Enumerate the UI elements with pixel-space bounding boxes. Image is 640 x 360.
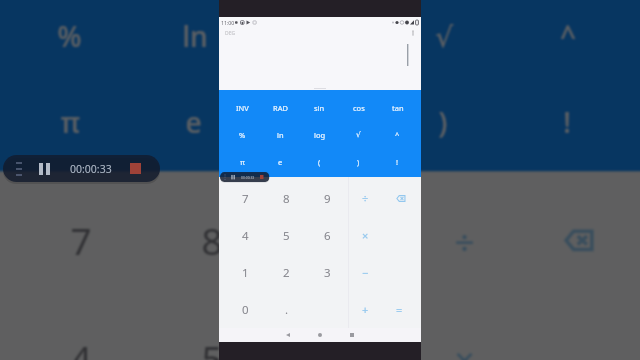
button[interactable]: ( (300, 148, 339, 175)
button[interactable]: 2 (266, 254, 307, 291)
staticText: tan (392, 103, 404, 113)
button[interactable]: 7 (13, 181, 147, 299)
staticText: ^ (395, 130, 400, 140)
staticText: ( (314, 104, 323, 143)
staticText: 6 (324, 228, 331, 244)
staticText: ) (438, 104, 448, 143)
staticText: 5 (283, 228, 290, 244)
button[interactable]: Pause (231, 175, 235, 179)
button[interactable]: e (131, 79, 256, 165)
staticText: . (285, 302, 289, 318)
staticText: e (186, 104, 205, 143)
button[interactable]: ln (261, 121, 300, 148)
button[interactable]: eq (382, 291, 416, 328)
staticText: cos (353, 103, 365, 113)
button[interactable]: 0 (224, 291, 266, 328)
staticText: 7 (70, 216, 93, 267)
button[interactable]: √ (381, 0, 506, 79)
button[interactable]: ! (378, 148, 417, 175)
button[interactable]: ) (381, 79, 506, 165)
button[interactable]: 9 (307, 180, 348, 217)
button[interactable]: % (223, 121, 261, 148)
staticText: 3 (324, 265, 331, 281)
button[interactable]: e (261, 148, 300, 175)
button[interactable]: ^ (378, 121, 417, 148)
button[interactable]: INV (223, 94, 261, 121)
button[interactable]: ) (339, 148, 378, 175)
button[interactable]: back (518, 181, 627, 299)
staticText: 6 (333, 335, 355, 360)
button[interactable]: sin (300, 94, 339, 121)
staticText: 1 (242, 265, 249, 281)
button[interactable]: π (10, 79, 131, 165)
staticText: RAD (273, 103, 288, 113)
button[interactable]: ( (256, 79, 381, 165)
button[interactable]: ÷ (410, 181, 518, 299)
staticText: ) (357, 157, 360, 167)
staticText: INV (236, 103, 249, 113)
button[interactable]: 6 (278, 299, 410, 360)
button[interactable]: Back (272, 328, 304, 342)
button[interactable]: − (348, 254, 382, 291)
button[interactable]: 8 (147, 181, 278, 299)
staticText: 9 (324, 191, 331, 207)
button[interactable]: 4 (224, 217, 266, 254)
staticText: 8 (283, 191, 290, 207)
staticText: = (396, 302, 403, 317)
button[interactable]: π (223, 148, 261, 175)
button[interactable]: 3 (307, 254, 348, 291)
other: Drag (16, 162, 22, 176)
button[interactable]: 7 (224, 180, 266, 217)
button[interactable]: Pause (39, 163, 50, 175)
button[interactable]: back (382, 180, 416, 217)
button[interactable]: % (10, 0, 131, 79)
staticText: 2 (283, 265, 290, 281)
button[interactable]: × (348, 217, 382, 254)
staticText: ! (396, 157, 399, 167)
button[interactable]: 5 (266, 217, 307, 254)
button[interactable]: Home (304, 328, 336, 342)
staticText: e (278, 157, 283, 167)
button[interactable]: ÷ (348, 180, 382, 217)
staticText: π (61, 104, 80, 143)
button[interactable]: 8 (266, 180, 307, 217)
staticText: ln (182, 18, 208, 56)
button[interactable]: RAD (261, 94, 300, 121)
button[interactable]: Stop (260, 175, 263, 179)
staticText: ( (318, 157, 321, 167)
button[interactable]: tan (378, 94, 417, 121)
staticText: ÷ (454, 216, 477, 264)
staticText: 5 (202, 335, 224, 360)
staticText: ln (277, 130, 284, 140)
staticText: − (362, 265, 369, 280)
button[interactable]: ! (506, 79, 630, 165)
button[interactable]: + (348, 291, 382, 328)
button[interactable]: Recents (336, 328, 368, 342)
button[interactable]: 1 (224, 254, 266, 291)
staticText: 7 (242, 191, 249, 207)
button[interactable]: × (410, 299, 518, 360)
button[interactable]: ^ (506, 0, 630, 79)
button[interactable]: 5 (147, 299, 278, 360)
button[interactable]: log (256, 0, 381, 79)
button[interactable]: 4 (13, 299, 147, 360)
button[interactable]: log (300, 121, 339, 148)
button[interactable]: 6 (307, 217, 348, 254)
staticText: ! (563, 104, 573, 143)
button[interactable]: cos (339, 94, 378, 121)
staticText: √ (435, 21, 454, 53)
staticText: 4 (242, 228, 249, 244)
button[interactable]: ln (131, 0, 256, 79)
button[interactable]: 9 (278, 181, 410, 299)
staticText: √ (356, 130, 361, 139)
staticText: 4 (70, 335, 93, 360)
button[interactable]: √ (339, 121, 378, 148)
staticText: + (362, 302, 369, 317)
